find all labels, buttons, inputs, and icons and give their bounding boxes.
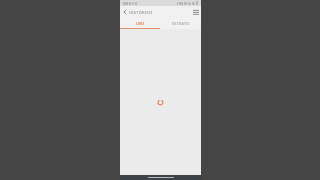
- button[interactable]: EXTRATO: [160, 18, 201, 29]
- button[interactable]: Menu: [192, 6, 201, 18]
- button[interactable]: USO: [120, 18, 160, 29]
- button[interactable]: Back: [120, 6, 129, 18]
- staticText: USO: [136, 21, 145, 26]
- staticText: HISTÓRICO: [129, 10, 153, 15]
- staticText: EXTRATO: [172, 21, 190, 26]
